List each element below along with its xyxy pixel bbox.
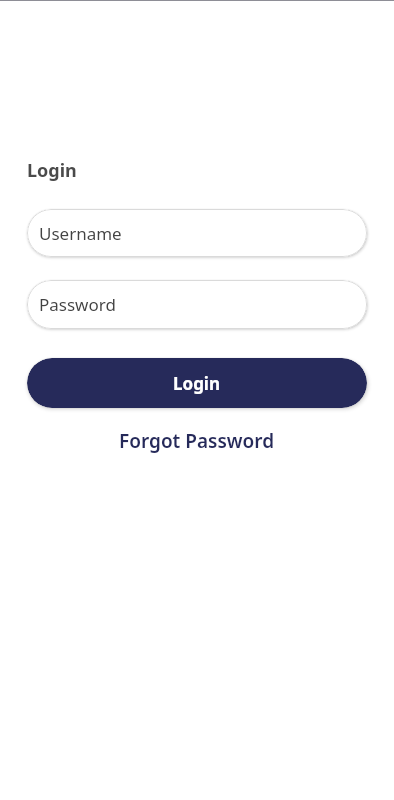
staticText: Username [39, 222, 122, 245]
button[interactable]: Forgot Password [119, 428, 275, 454]
button[interactable]: Username [27, 209, 367, 257]
staticText: Login [173, 372, 221, 395]
button[interactable]: Login [27, 358, 367, 408]
staticText: Login [27, 158, 77, 183]
staticText: Password [39, 293, 116, 316]
button[interactable]: Password [27, 280, 367, 329]
